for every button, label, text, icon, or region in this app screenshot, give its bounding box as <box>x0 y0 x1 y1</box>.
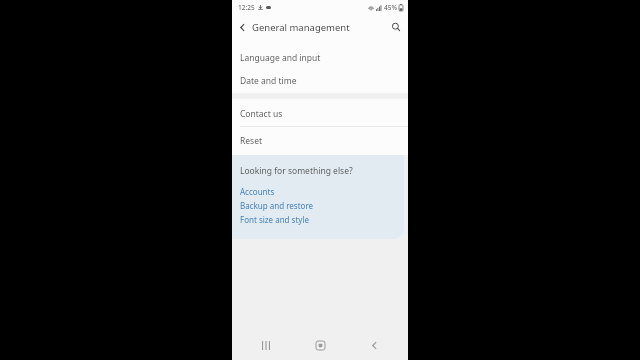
staticText: Font size and style <box>240 214 309 225</box>
staticText: Accounts <box>240 186 275 197</box>
button[interactable]: Search <box>384 15 408 39</box>
button[interactable]: Font size and style <box>240 212 404 226</box>
staticText: Reset <box>240 135 263 147</box>
staticText: Contact us <box>240 108 283 120</box>
button[interactable]: Date and time <box>232 69 408 93</box>
button[interactable]: Contact us <box>232 101 408 126</box>
staticText: Date and time <box>240 75 297 87</box>
button[interactable]: Accounts <box>240 184 404 198</box>
staticText: Backup and restore <box>240 200 314 211</box>
button[interactable]: Recent apps <box>246 330 286 360</box>
button[interactable]: Back <box>354 330 394 360</box>
button[interactable]: Reset <box>232 127 408 155</box>
button[interactable]: Navigate up <box>232 15 252 39</box>
staticText: 45% <box>384 3 397 12</box>
staticText: General management <box>252 21 384 34</box>
button[interactable]: Backup and restore <box>240 198 404 212</box>
staticText: 12:25 <box>238 3 255 12</box>
staticText: Looking for something else? <box>240 165 353 177</box>
staticText: Language and input <box>240 52 321 64</box>
button[interactable]: Home <box>300 330 340 360</box>
button[interactable]: Language and input <box>232 46 408 69</box>
